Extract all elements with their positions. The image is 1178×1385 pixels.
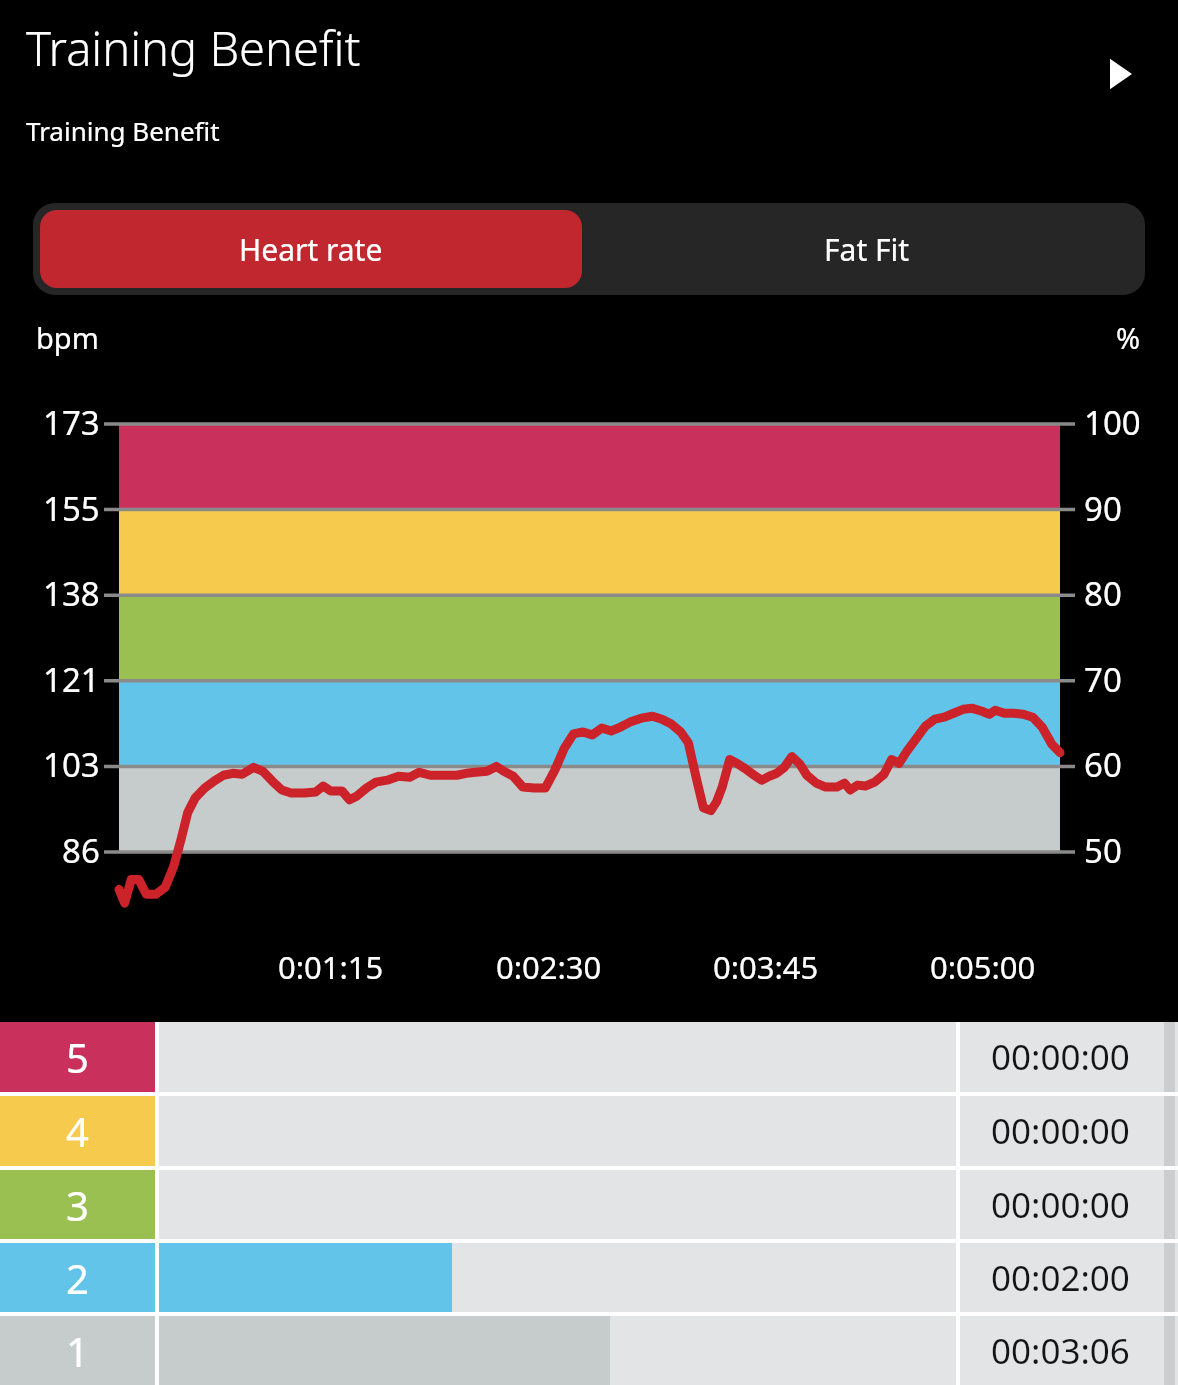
staticText: 2 xyxy=(66,1251,89,1305)
staticText: 00:00:00 xyxy=(991,1033,1130,1081)
button[interactable]: Heart rate xyxy=(40,210,582,288)
staticText: 155 xyxy=(43,486,100,531)
staticText: 138 xyxy=(43,571,100,616)
button[interactable]: 3 xyxy=(0,1170,1178,1239)
staticText: % xyxy=(1116,318,1141,357)
button[interactable]: 1 xyxy=(0,1316,1178,1385)
staticText: Training Benefit xyxy=(26,113,220,148)
staticText: 00:02:00 xyxy=(991,1254,1130,1302)
staticText: 00:00:00 xyxy=(991,1107,1130,1155)
staticText: 70 xyxy=(1084,657,1122,702)
staticText: 50 xyxy=(1084,828,1122,873)
staticText: 1 xyxy=(66,1324,89,1378)
staticText: 3 xyxy=(66,1178,89,1232)
staticText: 103 xyxy=(43,742,100,787)
button[interactable]: Fat Fit xyxy=(589,203,1145,295)
button[interactable]: Play xyxy=(1090,44,1150,104)
staticText: 100 xyxy=(1084,400,1141,445)
staticText: 00:03:06 xyxy=(991,1327,1130,1375)
staticText: 90 xyxy=(1084,486,1122,531)
staticText: 0:02:30 xyxy=(496,946,602,988)
staticText: 0:03:45 xyxy=(713,946,819,988)
staticText: 0:05:00 xyxy=(930,946,1036,988)
staticText: Training Benefit xyxy=(26,16,361,80)
button[interactable]: 2 xyxy=(0,1243,1178,1312)
staticText: 0:01:15 xyxy=(278,946,384,988)
button[interactable]: 5 xyxy=(0,1022,1178,1092)
staticText: 121 xyxy=(43,657,100,702)
staticText: 80 xyxy=(1084,571,1122,616)
staticText: 4 xyxy=(66,1104,89,1158)
staticText: 00:00:00 xyxy=(991,1181,1130,1229)
staticText: Fat Fit xyxy=(824,229,910,270)
staticText: 60 xyxy=(1084,742,1122,787)
staticText: Heart rate xyxy=(239,229,383,270)
staticText: 173 xyxy=(43,400,100,445)
button[interactable]: 4 xyxy=(0,1096,1178,1166)
staticText: 5 xyxy=(66,1030,89,1084)
staticText: bpm xyxy=(36,318,99,357)
staticText: 86 xyxy=(62,828,100,873)
